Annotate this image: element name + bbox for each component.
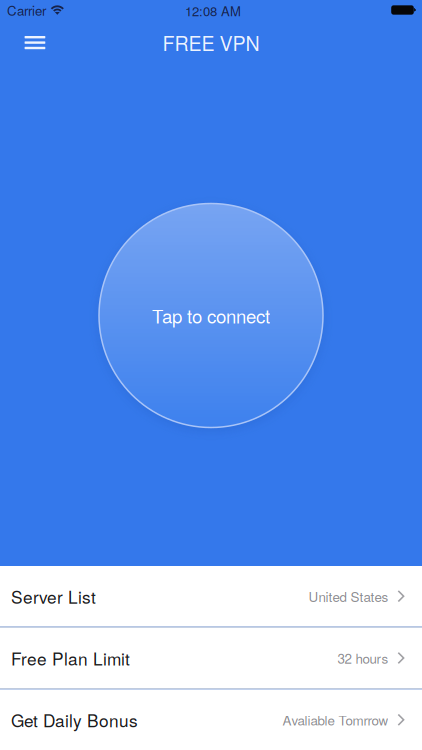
button[interactable]: Menu [15,26,55,59]
button[interactable]: Get Daily Bonus [0,690,422,750]
staticText: FREE VPN [162,28,259,56]
button[interactable]: Free Plan Limit [0,628,422,688]
staticText: Free Plan Limit [11,646,130,670]
staticText: United States [308,587,388,606]
staticText: 12:08 AM [185,1,241,20]
button[interactable]: Tap to connect [99,203,323,427]
button[interactable]: Server List [0,566,422,626]
staticText: Avaliable Tomrrow [282,710,388,729]
staticText: Carrier [7,0,46,20]
staticText: Tap to connect [152,302,270,329]
staticText: Server List [11,584,96,608]
staticText: 32 hours [337,648,388,668]
staticText: Get Daily Bonus [11,707,138,732]
